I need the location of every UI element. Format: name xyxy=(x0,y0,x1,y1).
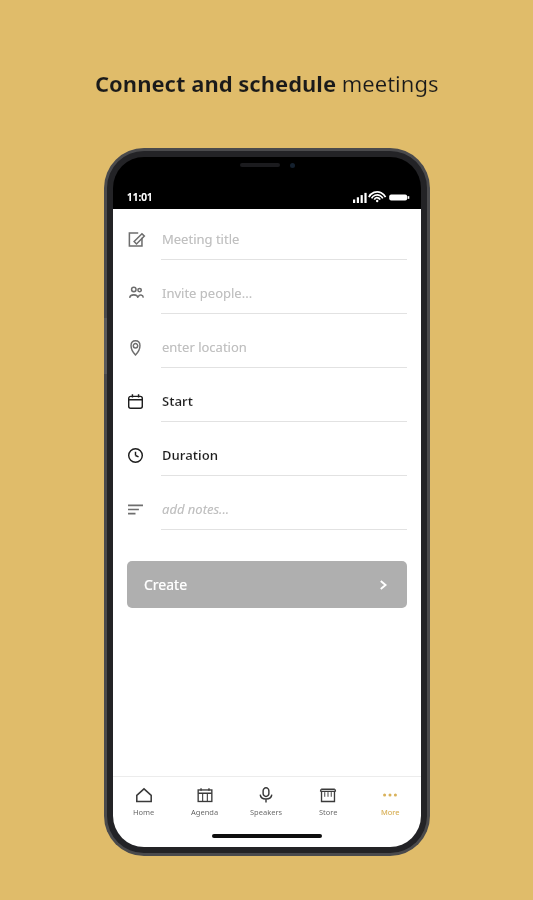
staticText: Duration xyxy=(162,446,219,464)
button[interactable]: enter location xyxy=(113,327,421,381)
staticText: Home xyxy=(133,807,155,817)
staticText: Invite people... xyxy=(162,284,253,302)
staticText: add notes... xyxy=(162,500,230,518)
button[interactable]: Store xyxy=(297,777,359,825)
button[interactable]: Agenda xyxy=(174,777,235,825)
staticText: More xyxy=(381,807,400,817)
staticText: enter location xyxy=(162,338,247,356)
button[interactable]: More xyxy=(359,777,421,825)
staticText: Agenda xyxy=(191,807,219,817)
staticText: Meeting title xyxy=(162,230,240,248)
button[interactable]: add notes... xyxy=(113,489,421,543)
staticText: Store xyxy=(319,807,338,817)
staticText: Connect and schedule meetings xyxy=(95,68,439,98)
staticText: 11:01 xyxy=(127,190,153,204)
button[interactable]: Start xyxy=(113,381,421,435)
staticText: Speakers xyxy=(250,807,283,817)
button[interactable]: Speakers xyxy=(235,777,297,825)
button[interactable]: Create xyxy=(127,561,407,608)
button[interactable]: Home xyxy=(113,777,174,825)
button[interactable]: Meeting title xyxy=(113,219,421,273)
staticText: Start xyxy=(162,392,193,410)
button[interactable]: Invite people... xyxy=(113,273,421,327)
staticText: Create xyxy=(144,575,188,594)
button[interactable]: Duration xyxy=(113,435,421,489)
